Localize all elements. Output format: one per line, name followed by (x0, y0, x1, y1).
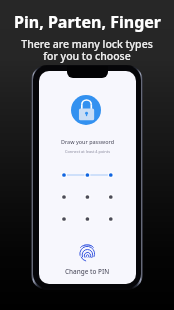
staticText: Change to PIN (65, 267, 110, 276)
staticText: Connect at least 4 points (65, 149, 111, 154)
button[interactable]: Unlock with fingerprint (78, 243, 96, 263)
staticText: Pin, Parten, Finger (14, 11, 161, 33)
staticText: Draw your password (61, 138, 114, 145)
button[interactable]: Change to PIN (39, 267, 136, 276)
staticText: There are many lock types for you to cho… (21, 37, 153, 63)
